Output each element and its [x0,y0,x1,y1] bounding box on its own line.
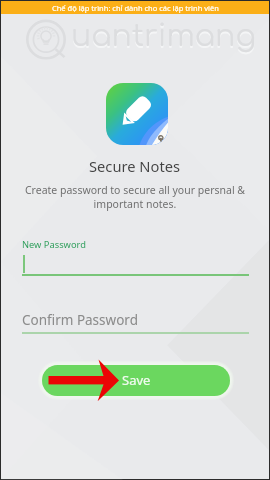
staticText: New Password [22,238,86,251]
staticText: Create password to secure all your persn… [21,183,249,211]
staticText: uantrimang [71,20,256,53]
staticText: Save [122,371,151,389]
staticText: uantrimang [71,22,256,55]
staticText: Chế độ lập trình: chỉ dành cho các lập t… [52,3,219,13]
button[interactable]: Save [42,365,230,396]
button[interactable]: Confirm Password [22,309,249,335]
button[interactable]: New Password [22,235,249,276]
staticText: Secure Notes [89,156,181,176]
staticText: Confirm Password [22,311,138,329]
